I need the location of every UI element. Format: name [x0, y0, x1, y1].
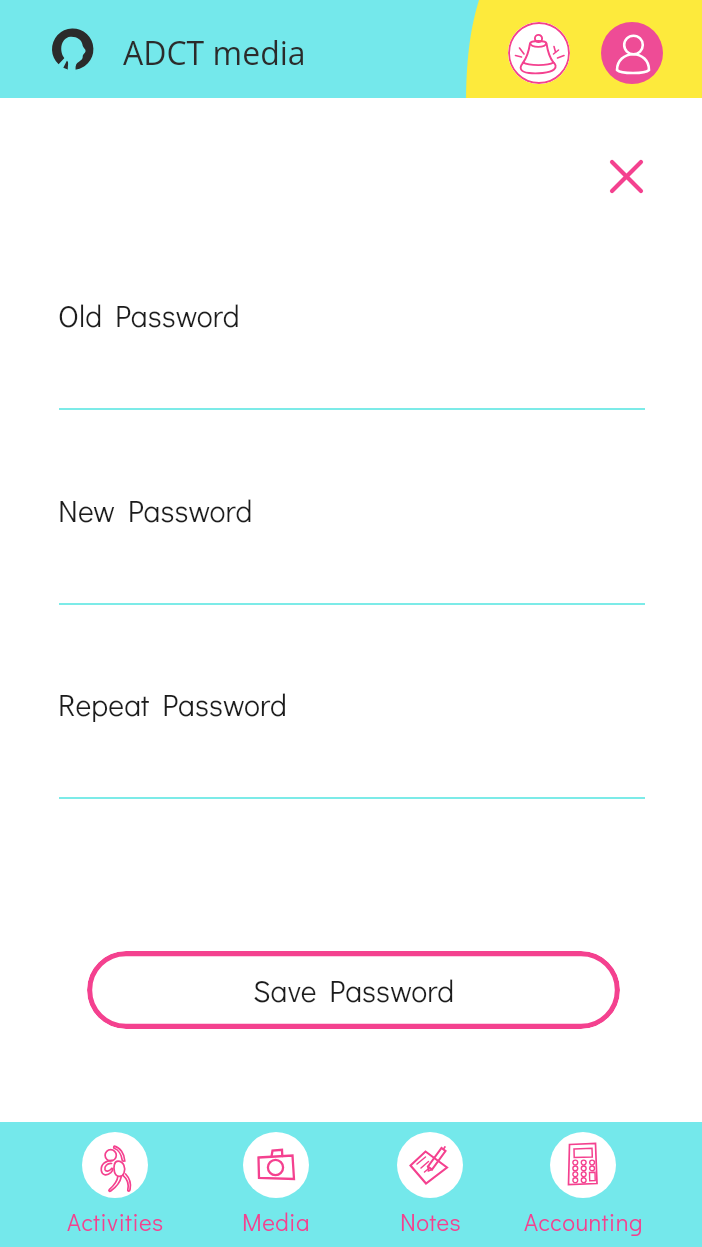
button[interactable]: New Password: [59, 483, 645, 607]
button[interactable]: Old Password: [59, 288, 645, 412]
button[interactable]: Accounting: [513, 1132, 653, 1242]
staticText: Activities: [67, 1206, 164, 1237]
button[interactable]: Media: [206, 1132, 346, 1242]
button[interactable]: Profile: [601, 22, 663, 84]
button[interactable]: Activities: [45, 1132, 185, 1242]
staticText: Accounting: [524, 1206, 643, 1237]
staticText: ADCT media: [123, 31, 306, 75]
button[interactable]: Notifications: [508, 22, 570, 84]
staticText: Repeat Password: [58, 685, 288, 724]
button[interactable]: Notes: [360, 1132, 500, 1242]
staticText: Save Password: [253, 971, 455, 1010]
staticText: Old Password: [58, 296, 240, 335]
staticText: Notes: [400, 1206, 461, 1237]
button[interactable]: Close: [601, 151, 652, 202]
staticText: Media: [242, 1206, 310, 1237]
button[interactable]: Repeat Password: [59, 677, 645, 801]
staticText: New Password: [58, 491, 253, 530]
button[interactable]: Save Password: [87, 951, 620, 1029]
